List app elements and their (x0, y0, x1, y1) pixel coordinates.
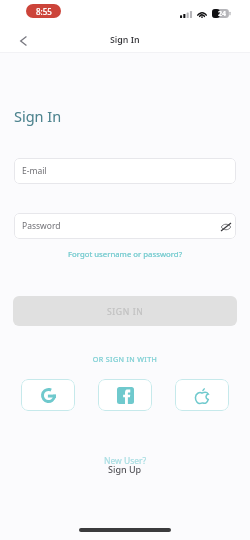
staticText: Sign In (14, 106, 62, 126)
button[interactable]: E-mail (14, 158, 236, 184)
button[interactable]: Sign in with Facebook (98, 379, 152, 411)
button[interactable]: Show password (219, 220, 232, 233)
button[interactable]: Password (14, 213, 236, 239)
staticText: Password (22, 220, 61, 232)
button[interactable]: Sign in with Google (21, 379, 75, 411)
staticText: SIGN IN (107, 306, 144, 318)
staticText: Sign In (110, 34, 140, 46)
button[interactable]: SIGN IN (13, 296, 237, 326)
staticText: 24 (218, 9, 227, 18)
button[interactable]: New User? (0, 455, 250, 479)
staticText: E-mail (22, 165, 47, 177)
button[interactable]: Back (10, 28, 36, 54)
button[interactable]: Sign in with Apple (175, 379, 229, 411)
button[interactable]: Forgot username or password? (0, 249, 250, 260)
staticText: 8:55 (36, 6, 52, 17)
staticText: New User? (104, 455, 147, 467)
staticText: Sign Up (108, 463, 142, 475)
staticText: OR SIGN IN WITH (0, 354, 250, 364)
